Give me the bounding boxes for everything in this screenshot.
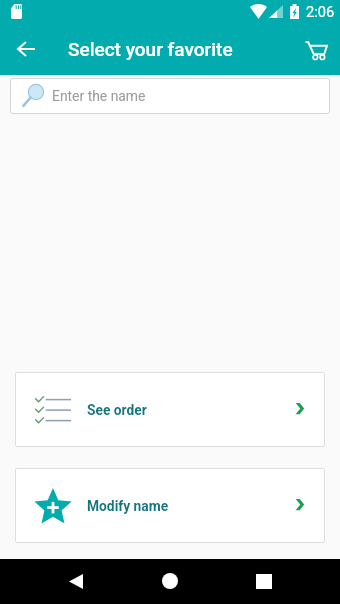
- staticText: Modify name: [87, 498, 169, 514]
- button[interactable]: Home: [148, 566, 192, 596]
- staticText: Enter the name: [52, 88, 146, 104]
- button[interactable]: See order: [15, 372, 325, 447]
- staticText: Select your favorite: [68, 38, 233, 60]
- button[interactable]: Shopping cart: [298, 32, 334, 68]
- button[interactable]: Recent apps: [242, 566, 286, 596]
- button[interactable]: Modify name: [15, 468, 325, 543]
- button[interactable]: Back: [8, 31, 44, 67]
- staticText: 2:06: [306, 3, 335, 20]
- staticText: See order: [87, 402, 147, 418]
- button[interactable]: Enter the name: [10, 78, 330, 114]
- button[interactable]: Back: [54, 566, 98, 596]
